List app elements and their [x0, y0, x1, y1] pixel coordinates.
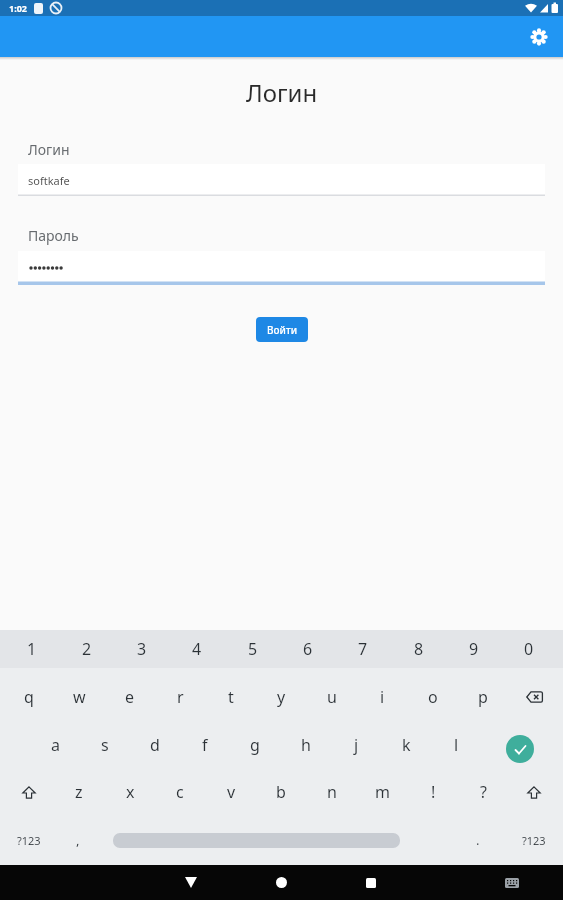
- staticText: k: [402, 734, 411, 756]
- button[interactable]: t: [207, 678, 255, 716]
- button[interactable]: 6: [282, 630, 334, 668]
- button[interactable]: g: [231, 726, 279, 764]
- button[interactable]: [171, 865, 211, 900]
- staticText: g: [250, 734, 260, 756]
- staticText: ?: [480, 781, 487, 803]
- button[interactable]: ?123: [509, 821, 559, 859]
- button[interactable]: [5, 773, 53, 811]
- button[interactable]: 5: [227, 630, 279, 668]
- staticText: 2: [82, 638, 92, 660]
- button[interactable]: c: [156, 773, 204, 811]
- button[interactable]: a: [31, 726, 79, 764]
- button[interactable]: [492, 865, 532, 900]
- staticText: d: [150, 734, 160, 756]
- staticText: j: [354, 734, 359, 756]
- button[interactable]: b: [257, 773, 305, 811]
- button[interactable]: [523, 21, 555, 53]
- button[interactable]: 0: [503, 630, 555, 668]
- staticText: Логин: [28, 140, 70, 159]
- staticText: Пароль: [28, 226, 79, 245]
- button[interactable]: [510, 773, 558, 811]
- staticText: 4: [192, 638, 202, 660]
- button[interactable]: q: [5, 678, 53, 716]
- staticText: b: [276, 781, 286, 803]
- staticText: softkafe: [28, 173, 70, 188]
- button[interactable]: [261, 865, 301, 900]
- button[interactable]: v: [207, 773, 255, 811]
- button[interactable]: f: [181, 726, 229, 764]
- button[interactable]: ?: [459, 773, 507, 811]
- button[interactable]: 9: [448, 630, 500, 668]
- staticText: 5: [248, 638, 258, 660]
- staticText: y: [277, 686, 286, 708]
- button[interactable]: Войти: [256, 317, 308, 342]
- staticText: i: [380, 686, 385, 708]
- staticText: 3: [137, 638, 147, 660]
- staticText: 0: [524, 638, 534, 660]
- staticText: n: [327, 781, 337, 803]
- button[interactable]: i: [358, 678, 406, 716]
- button[interactable]: z: [55, 773, 103, 811]
- staticText: 1: [27, 638, 37, 660]
- button[interactable]: d: [131, 726, 179, 764]
- button[interactable]: softkafe: [18, 164, 545, 196]
- button[interactable]: .: [454, 821, 502, 859]
- button[interactable]: x: [106, 773, 154, 811]
- button[interactable]: p: [459, 678, 507, 716]
- button[interactable]: l: [432, 726, 480, 764]
- staticText: ?123: [17, 833, 41, 848]
- staticText: 6: [303, 638, 313, 660]
- staticText: s: [101, 734, 109, 756]
- staticText: ?123: [522, 833, 546, 848]
- button[interactable]: [18, 251, 545, 285]
- button[interactable]: s: [81, 726, 129, 764]
- button[interactable]: [351, 865, 391, 900]
- staticText: q: [24, 686, 34, 708]
- button[interactable]: 2: [61, 630, 113, 668]
- staticText: v: [227, 781, 236, 803]
- staticText: z: [75, 781, 83, 803]
- staticText: 7: [358, 638, 368, 660]
- staticText: u: [327, 686, 337, 708]
- button[interactable]: h: [282, 726, 330, 764]
- button[interactable]: 4: [171, 630, 223, 668]
- button[interactable]: ?123: [4, 821, 54, 859]
- button[interactable]: 3: [116, 630, 168, 668]
- staticText: p: [478, 686, 488, 708]
- button[interactable]: [113, 833, 400, 848]
- staticText: 9: [469, 638, 479, 660]
- staticText: c: [176, 781, 184, 803]
- staticText: x: [126, 781, 135, 803]
- staticText: 8: [414, 638, 424, 660]
- staticText: r: [177, 686, 184, 708]
- staticText: o: [428, 686, 438, 708]
- staticText: .: [476, 831, 480, 849]
- button[interactable]: e: [106, 678, 154, 716]
- button[interactable]: n: [308, 773, 356, 811]
- button[interactable]: !: [409, 773, 457, 811]
- button[interactable]: 1: [6, 630, 58, 668]
- button[interactable]: o: [409, 678, 457, 716]
- staticText: w: [73, 686, 86, 708]
- staticText: t: [228, 686, 234, 708]
- button[interactable]: 8: [393, 630, 445, 668]
- staticText: Логин: [246, 76, 318, 109]
- staticText: 1:02: [9, 2, 27, 14]
- button[interactable]: j: [332, 726, 380, 764]
- button[interactable]: r: [156, 678, 204, 716]
- staticText: m: [375, 781, 390, 803]
- staticText: f: [202, 734, 208, 756]
- button[interactable]: y: [257, 678, 305, 716]
- button[interactable]: w: [55, 678, 103, 716]
- button[interactable]: [506, 735, 534, 763]
- button[interactable]: u: [308, 678, 356, 716]
- staticText: l: [454, 734, 459, 756]
- button[interactable]: [510, 678, 558, 716]
- staticText: Войти: [267, 323, 298, 337]
- button[interactable]: m: [358, 773, 406, 811]
- button[interactable]: ,: [54, 821, 102, 859]
- button[interactable]: k: [382, 726, 430, 764]
- button[interactable]: 7: [337, 630, 389, 668]
- staticText: !: [431, 781, 436, 803]
- staticText: a: [51, 734, 60, 756]
